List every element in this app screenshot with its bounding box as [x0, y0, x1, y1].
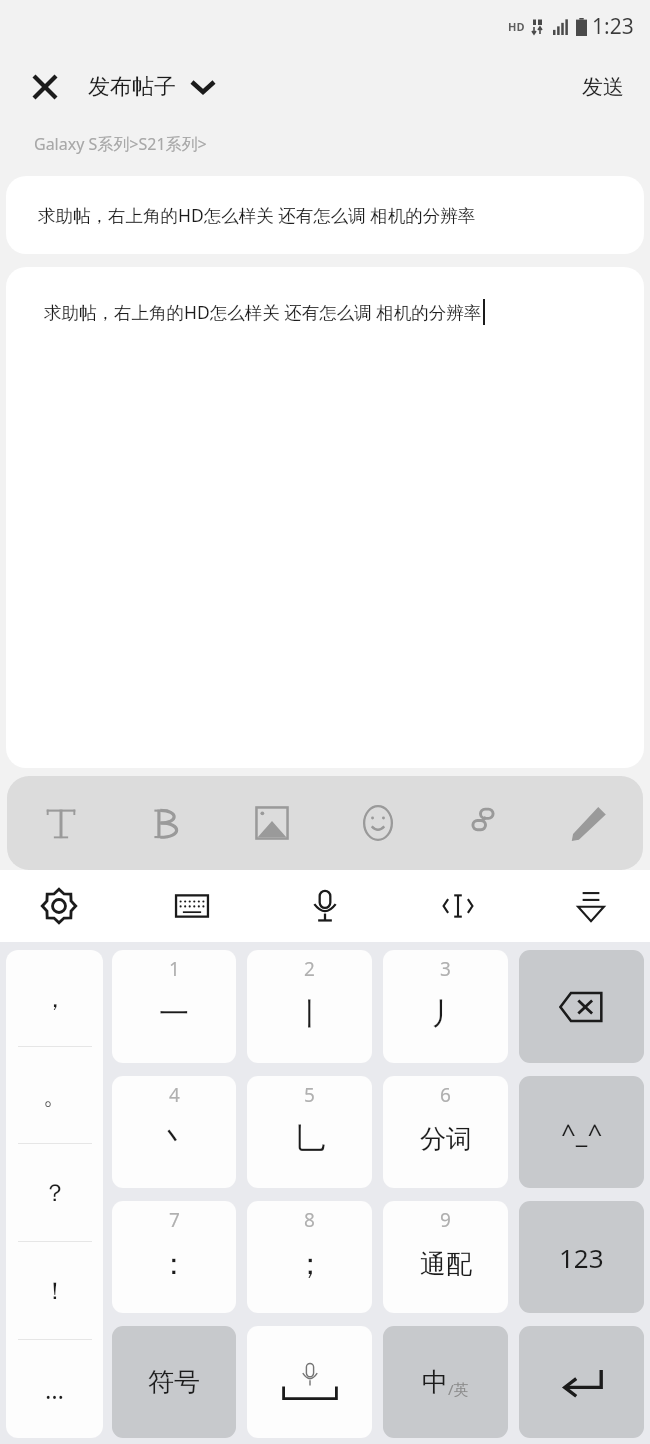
staticText: 3 — [440, 956, 451, 982]
button[interactable]: … — [6, 1340, 103, 1438]
button[interactable]: 9 — [383, 1201, 508, 1313]
staticText: … — [45, 1373, 64, 1406]
staticText: ！ — [43, 1276, 67, 1306]
button[interactable]: Text style — [33, 795, 89, 851]
button[interactable]: Enter — [519, 1326, 644, 1438]
button[interactable]: 6 — [383, 1076, 508, 1188]
button[interactable]: 2 — [247, 950, 372, 1063]
button[interactable]: Close — [22, 64, 68, 110]
button[interactable]: Hide keyboard — [562, 877, 620, 935]
button[interactable]: Insert link — [455, 795, 511, 851]
button[interactable]: Bold — [139, 795, 195, 851]
button[interactable]: 123 — [519, 1201, 644, 1313]
button[interactable]: 7 — [112, 1201, 236, 1313]
staticText: ： — [159, 1245, 189, 1283]
staticText: 丶 — [159, 1120, 189, 1158]
staticText: 7 — [169, 1207, 180, 1233]
button[interactable]: 3 — [383, 950, 508, 1063]
staticText: 9 — [440, 1207, 451, 1233]
staticText: 分词 — [420, 1123, 472, 1156]
button[interactable]: ^_^ — [519, 1076, 644, 1188]
button[interactable]: Insert emoji — [350, 795, 406, 851]
button[interactable]: 符号 — [112, 1326, 236, 1438]
button[interactable]: Voice input — [296, 877, 354, 935]
staticText: 求助帖，右上角的HD怎么样关 还有怎么调 相机的分辨率 — [38, 203, 476, 227]
button[interactable]: Draw — [561, 795, 617, 851]
button[interactable]: 发送 — [582, 74, 624, 100]
button[interactable]: 发布帖子 — [88, 73, 216, 101]
staticText: HD — [508, 19, 525, 34]
button[interactable] — [519, 950, 644, 1063]
staticText: 丿 — [431, 995, 461, 1033]
button[interactable]: 1 — [112, 950, 236, 1063]
staticText: 发送 — [582, 74, 624, 100]
staticText: ， — [43, 984, 67, 1014]
button[interactable]: Insert image — [244, 795, 300, 851]
button[interactable]: ， — [6, 950, 103, 1047]
staticText: /英 — [448, 1379, 469, 1399]
button[interactable]: ！ — [6, 1242, 103, 1340]
staticText: Galaxy S系列>S21系列> — [34, 133, 207, 155]
staticText: ？ — [43, 1178, 67, 1208]
button[interactable]: ？ — [6, 1144, 103, 1242]
staticText: 通配 — [420, 1248, 472, 1281]
button[interactable]: 中 — [383, 1326, 508, 1438]
button[interactable]: 4 — [112, 1076, 236, 1188]
button[interactable]: 8 — [247, 1201, 372, 1313]
staticText: ； — [295, 1245, 325, 1283]
staticText: 求助帖，右上角的HD怎么样关 还有怎么调 相机的分辨率 — [44, 300, 482, 324]
button[interactable]: Cursor control — [429, 877, 487, 935]
staticText: 一 — [159, 995, 189, 1033]
staticText: 8 — [304, 1207, 315, 1233]
staticText: 5 — [304, 1082, 315, 1108]
staticText: 1 — [169, 956, 180, 982]
staticText: 6 — [440, 1082, 451, 1108]
button[interactable]: 求助帖，右上角的HD怎么样关 还有怎么调 相机的分辨率 — [6, 176, 644, 254]
button[interactable]: Keyboard layout — [163, 877, 221, 935]
staticText: ^_^ — [561, 1115, 603, 1150]
button[interactable]: 求助帖，右上角的HD怎么样关 还有怎么调 相机的分辨率 — [6, 267, 644, 768]
staticText: 发布帖子 — [88, 73, 176, 101]
staticText: 丨 — [295, 995, 325, 1033]
staticText: 中 — [422, 1366, 448, 1399]
button[interactable]: 5 — [247, 1076, 372, 1188]
staticText: 。 — [43, 1081, 67, 1111]
staticText: 1:23 — [592, 12, 634, 41]
staticText: 123 — [559, 1240, 604, 1275]
button[interactable]: Space — [247, 1326, 372, 1438]
staticText: 符号 — [148, 1366, 200, 1399]
staticText: 乚 — [295, 1120, 325, 1158]
staticText: 2 — [304, 956, 315, 982]
staticText: 4 — [169, 1082, 180, 1108]
button[interactable]: 。 — [6, 1047, 103, 1144]
button[interactable]: Settings — [30, 877, 88, 935]
button[interactable]: Galaxy S系列>S21系列> — [0, 122, 650, 166]
